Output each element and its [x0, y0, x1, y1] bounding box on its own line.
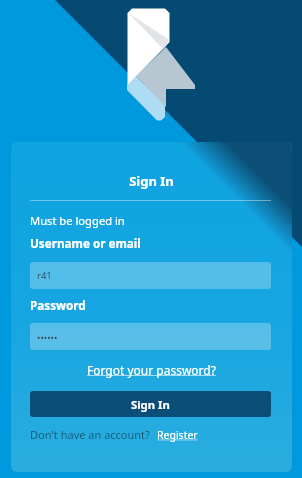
staticText: Don't have an account?: [30, 427, 150, 442]
staticText: Sign In: [11, 172, 292, 190]
staticText: r41: [37, 269, 52, 282]
button[interactable]: Forgot your password?: [11, 362, 292, 378]
button[interactable]: Register: [157, 428, 198, 442]
button[interactable]: Sign In: [30, 391, 271, 417]
staticText: ••••••: [37, 331, 58, 343]
button[interactable]: r41: [37, 262, 271, 289]
staticText: Username or email: [30, 235, 141, 251]
button[interactable]: ••••••: [37, 323, 271, 350]
staticText: Password: [30, 297, 86, 313]
staticText: Sign In: [131, 397, 170, 412]
staticText: Forgot your password?: [87, 362, 216, 378]
staticText: Must be logged in: [30, 213, 125, 228]
